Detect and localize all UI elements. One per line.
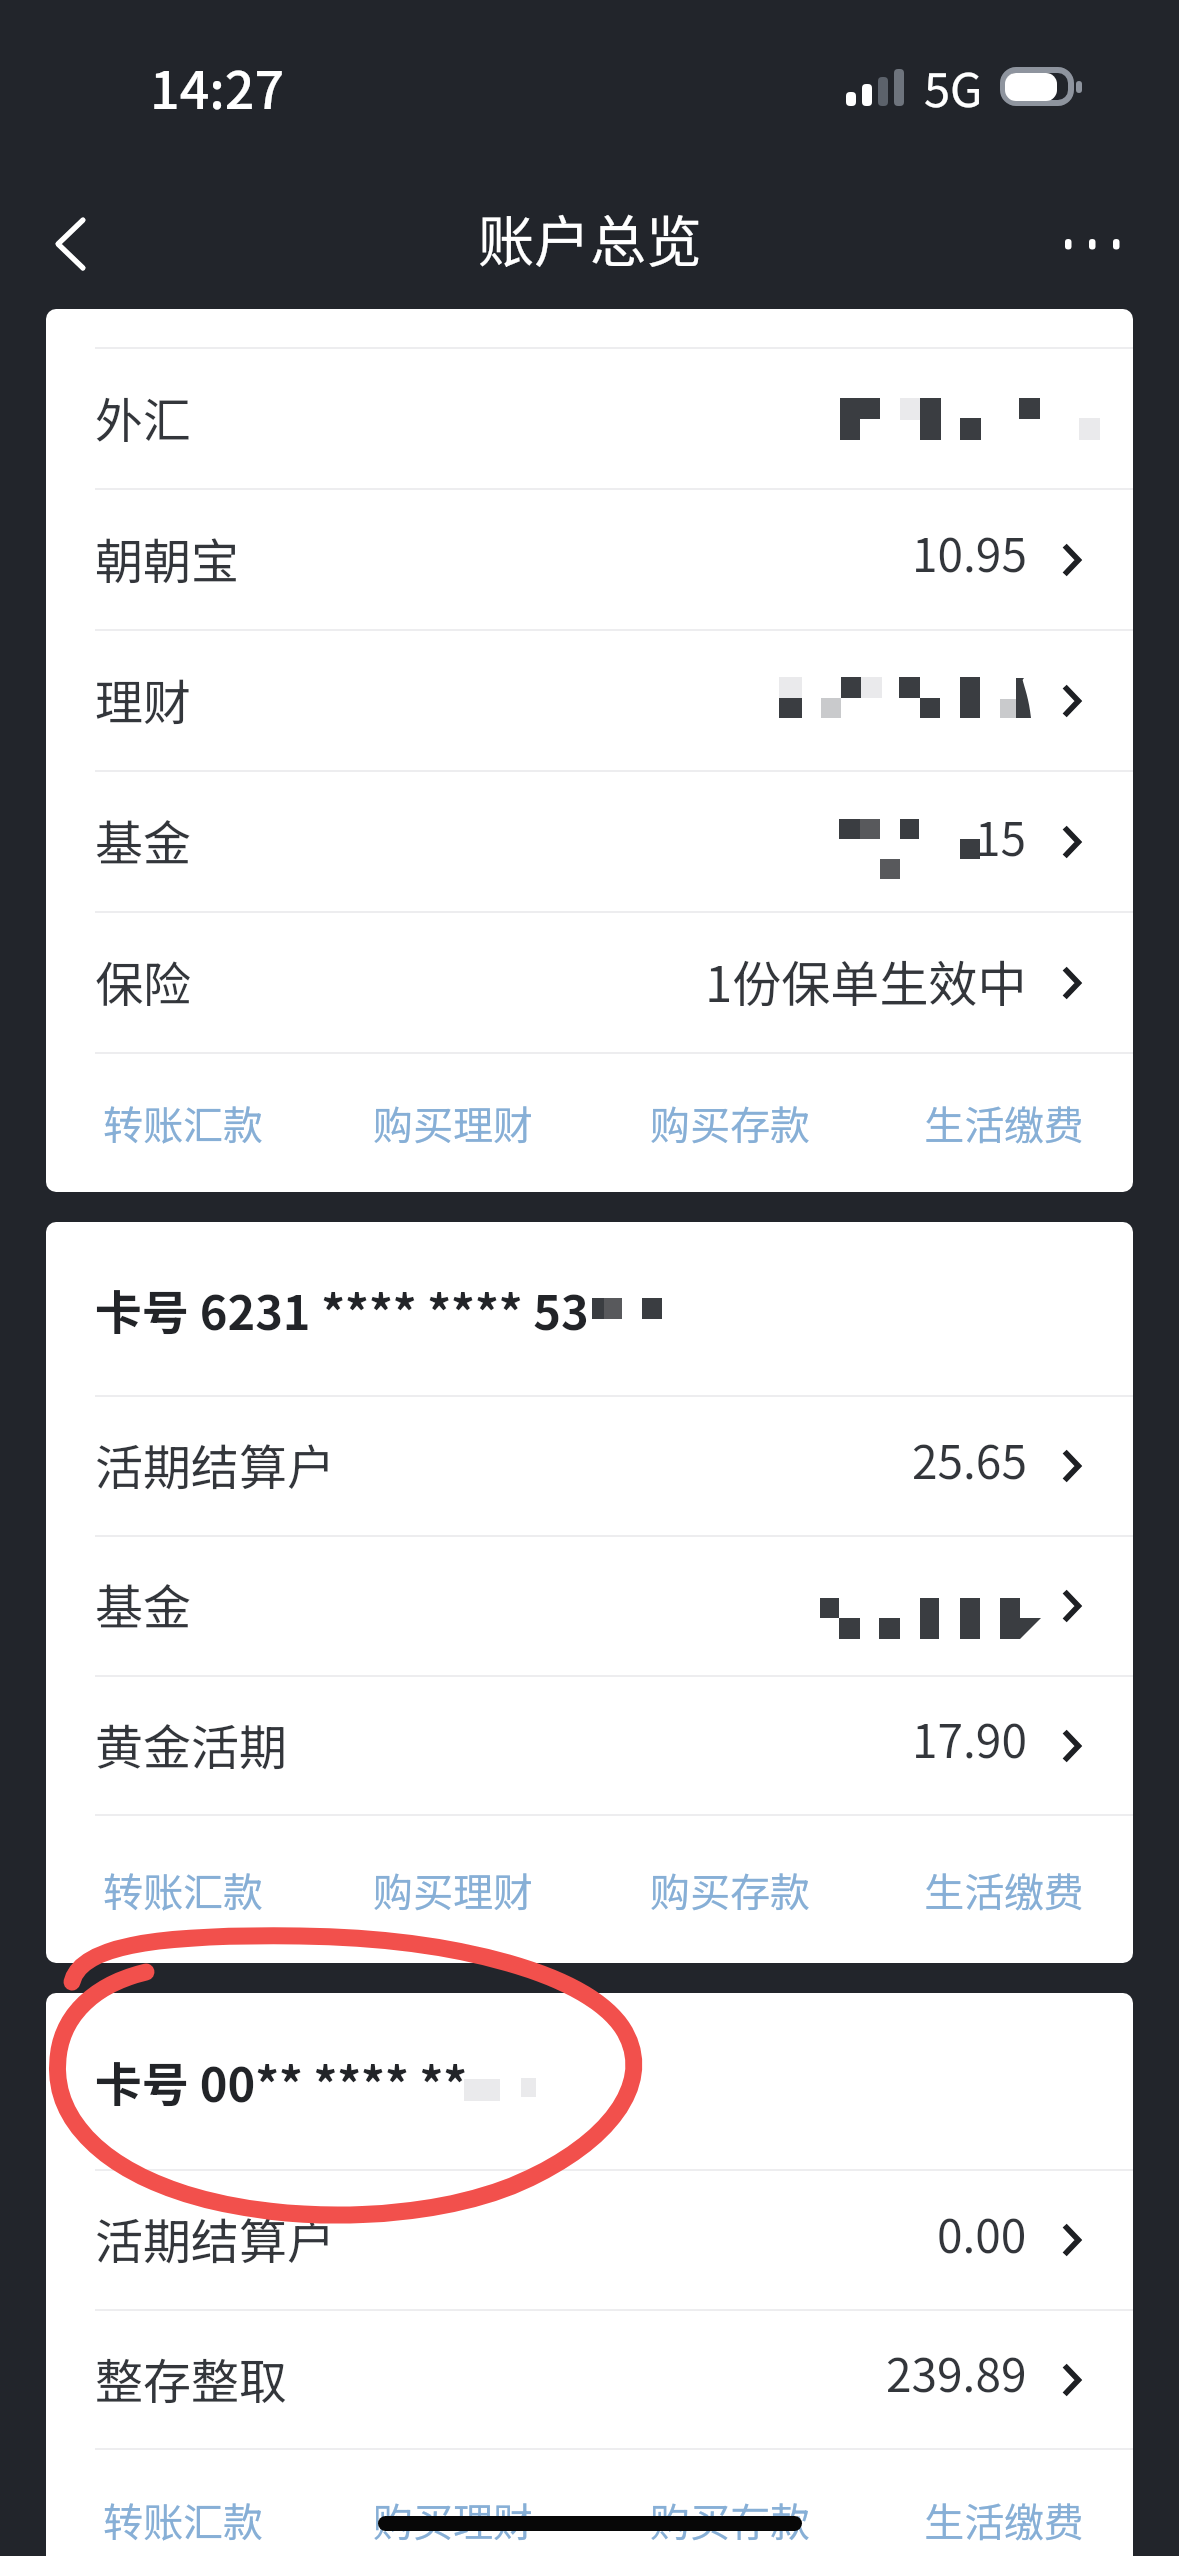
staticText: 10.95: [912, 519, 1027, 586]
button[interactable]: 外汇: [46, 349, 1133, 488]
button[interactable]: 生活缴费: [908, 2450, 1100, 2556]
staticText: 黄金活期: [95, 1709, 288, 1779]
staticText: 购买理财: [373, 2491, 533, 2549]
staticText: 保险: [95, 946, 192, 1016]
staticText: 生活缴费: [924, 1094, 1084, 1152]
staticText: 基金: [95, 1569, 192, 1639]
staticText: 生活缴费: [924, 2491, 1084, 2549]
staticText: 卡号 6231 **** **** 53: [95, 1275, 589, 1343]
button[interactable]: 保险: [46, 913, 1133, 1052]
staticText: 整存整取: [95, 2343, 288, 2413]
staticText: 转账汇款: [103, 1861, 263, 1919]
button[interactable]: 购买理财: [357, 1054, 549, 1192]
staticText: 活期结算户: [95, 1429, 336, 1499]
button[interactable]: More options: [1044, 201, 1140, 277]
button[interactable]: 购买存款: [634, 1816, 826, 1963]
button[interactable]: Back: [22, 196, 118, 292]
button[interactable]: 购买理财: [357, 2450, 549, 2556]
button[interactable]: 整存整取: [46, 2311, 1133, 2448]
staticText: 账户总览: [478, 197, 702, 278]
staticText: 14:27: [150, 49, 285, 124]
button[interactable]: 购买存款: [634, 2450, 826, 2556]
staticText: 1份保单生效中: [705, 945, 1027, 1016]
button[interactable]: 购买理财: [357, 1816, 549, 1963]
button[interactable]: 基金: [46, 1537, 1133, 1675]
staticText: 25.65: [912, 1426, 1027, 1493]
button[interactable]: 黄金活期: [46, 1677, 1133, 1814]
staticText: 购买存款: [650, 1861, 810, 1919]
button[interactable]: 转账汇款: [87, 2450, 279, 2556]
button[interactable]: 购买存款: [634, 1054, 826, 1192]
staticText: 生活缴费: [924, 1861, 1084, 1919]
staticText: 卡号 00** **** **: [95, 2047, 468, 2115]
staticText: 17.90: [912, 1705, 1027, 1772]
staticText: 转账汇款: [103, 2491, 263, 2549]
button[interactable]: 基金: [46, 772, 1133, 911]
staticText: 0.00: [937, 2200, 1027, 2267]
staticText: 购买理财: [373, 1094, 533, 1152]
staticText: 转账汇款: [103, 1094, 263, 1152]
button[interactable]: 生活缴费: [908, 1054, 1100, 1192]
button[interactable]: 生活缴费: [908, 1816, 1100, 1963]
button[interactable]: 理财: [46, 631, 1133, 770]
staticText: 朝朝宝: [95, 523, 240, 593]
staticText: 5G: [924, 52, 983, 120]
staticText: 活期结算户: [95, 2203, 336, 2273]
button[interactable]: 朝朝宝: [46, 490, 1133, 629]
staticText: 购买存款: [650, 2491, 810, 2549]
staticText: 购买存款: [650, 1094, 810, 1152]
staticText: 购买理财: [373, 1861, 533, 1919]
staticText: 理财: [95, 664, 192, 734]
button[interactable]: 转账汇款: [87, 1054, 279, 1192]
button[interactable]: 活期结算户: [46, 2171, 1133, 2309]
staticText: 外汇: [95, 382, 192, 452]
staticText: 基金: [95, 805, 192, 875]
button[interactable]: 活期结算户: [46, 1397, 1133, 1535]
staticText: 239.89: [886, 2339, 1027, 2406]
button[interactable]: 转账汇款: [87, 1816, 279, 1963]
staticText: 15: [975, 803, 1027, 870]
